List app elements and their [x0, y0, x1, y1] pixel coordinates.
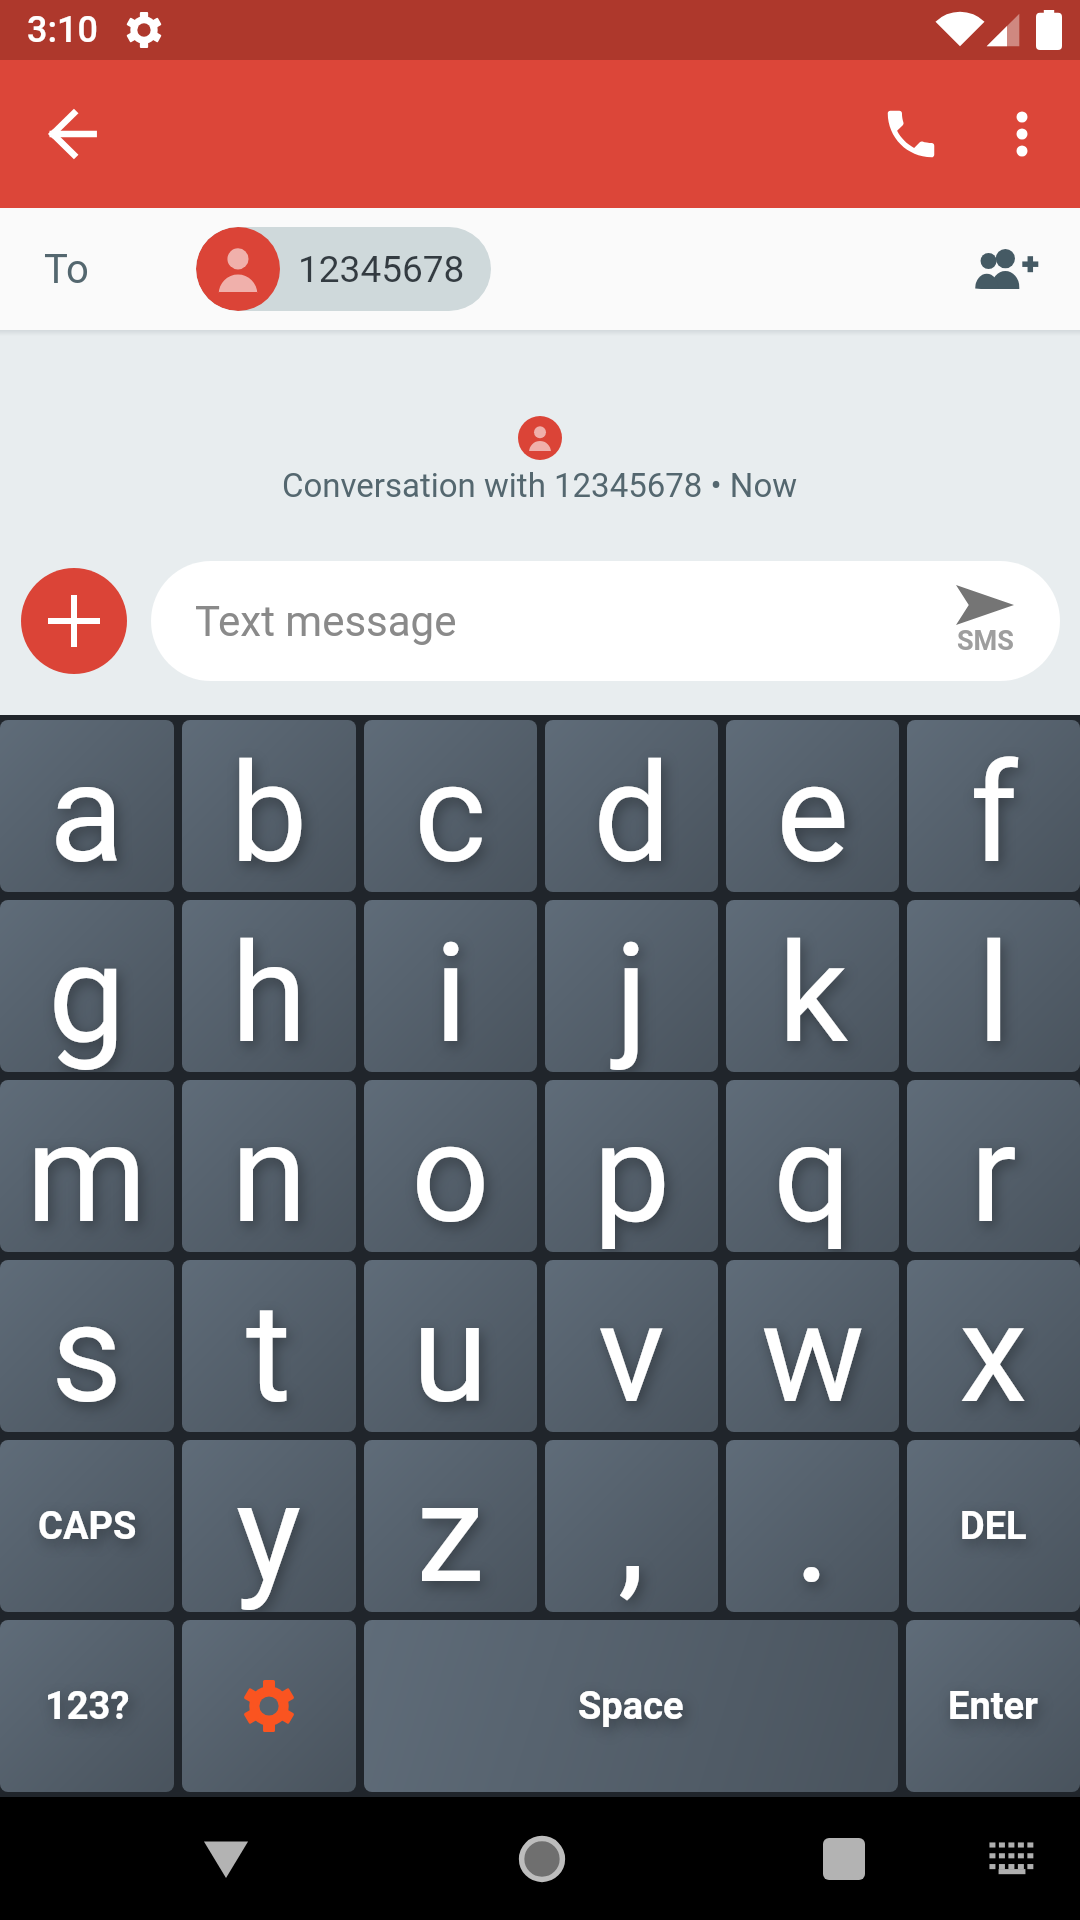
button[interactable]: e [726, 720, 899, 892]
button[interactable]: DEL [907, 1440, 1080, 1612]
button[interactable]: q [726, 1080, 899, 1252]
button[interactable] [875, 98, 947, 170]
button[interactable] [984, 1831, 1040, 1887]
staticText: Enter [948, 1684, 1038, 1729]
staticText: u [412, 1273, 489, 1432]
button[interactable]: g [0, 900, 174, 1072]
staticText: 12345678 [298, 248, 465, 291]
button[interactable]: j [545, 900, 718, 1072]
button[interactable]: s [0, 1260, 174, 1432]
staticText: 123? [45, 1684, 130, 1729]
button[interactable]: x [907, 1260, 1080, 1432]
button[interactable]: b [182, 720, 356, 892]
staticText: q [773, 1093, 852, 1252]
staticText: f [970, 733, 1018, 892]
button[interactable] [198, 1831, 254, 1887]
button[interactable]: f [907, 720, 1080, 892]
staticText: t [246, 1273, 292, 1432]
staticText: . [794, 1453, 831, 1612]
button[interactable]: h [182, 900, 356, 1072]
button[interactable]: n [182, 1080, 356, 1252]
button[interactable]: u [364, 1260, 537, 1432]
staticText: k [778, 913, 848, 1072]
staticText: CAPS [38, 1504, 137, 1549]
staticText: , [618, 1453, 646, 1612]
staticText: l [977, 913, 1011, 1072]
staticText: s [51, 1273, 123, 1432]
staticText: w [761, 1273, 865, 1432]
button[interactable]: 123? [0, 1620, 174, 1792]
button[interactable]: a [0, 720, 174, 892]
button[interactable]: l [907, 900, 1080, 1072]
staticText: y [236, 1453, 302, 1612]
staticText: c [414, 733, 487, 892]
staticText: e [776, 733, 850, 892]
button[interactable]: SMS [956, 585, 1014, 657]
button[interactable]: Text message [151, 561, 1060, 681]
staticText: r [970, 1093, 1017, 1252]
staticText: 3:10 [27, 9, 98, 51]
button[interactable] [182, 1620, 356, 1792]
button[interactable] [21, 568, 127, 674]
staticText: o [411, 1093, 490, 1252]
button[interactable]: z [364, 1440, 537, 1612]
button[interactable]: Enter [906, 1620, 1080, 1792]
button[interactable]: k [726, 900, 899, 1072]
staticText: p [593, 1093, 671, 1252]
button[interactable]: i [364, 900, 537, 1072]
staticText: x [959, 1273, 1028, 1432]
staticText: Text message [195, 597, 457, 646]
button[interactable] [816, 1831, 872, 1887]
button[interactable]: m [0, 1080, 174, 1252]
staticText: m [26, 1093, 148, 1252]
button[interactable]: v [545, 1260, 718, 1432]
button[interactable] [37, 98, 109, 170]
button[interactable]: t [182, 1260, 356, 1432]
staticText: To [44, 246, 89, 293]
button[interactable] [980, 239, 1040, 299]
staticText: j [615, 913, 649, 1072]
staticText: i [434, 913, 468, 1072]
button[interactable]: . [726, 1440, 899, 1612]
staticText: b [230, 733, 308, 892]
button[interactable]: p [545, 1080, 718, 1252]
staticText: d [593, 733, 671, 892]
staticText: v [598, 1273, 665, 1432]
staticText: h [231, 913, 308, 1072]
staticText: SMS [957, 625, 1014, 657]
staticText: a [49, 733, 125, 892]
button[interactable]: 12345678 [196, 227, 491, 311]
button[interactable]: o [364, 1080, 537, 1252]
staticText: DEL [960, 1504, 1027, 1549]
button[interactable]: r [907, 1080, 1080, 1252]
button[interactable]: CAPS [0, 1440, 174, 1612]
button[interactable]: , [545, 1440, 718, 1612]
button[interactable]: c [364, 720, 537, 892]
button[interactable]: w [726, 1260, 899, 1432]
staticText: z [416, 1453, 485, 1612]
staticText: g [48, 913, 126, 1072]
staticText: Space [578, 1684, 684, 1729]
button[interactable]: d [545, 720, 718, 892]
button[interactable]: Space [364, 1620, 898, 1792]
button[interactable] [986, 98, 1058, 170]
staticText: Conversation with 12345678 • Now [282, 466, 798, 505]
button[interactable]: y [182, 1440, 356, 1612]
staticText: n [231, 1093, 308, 1252]
button[interactable] [514, 1831, 570, 1887]
